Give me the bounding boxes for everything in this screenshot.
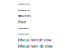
staticText: Presentation [17, 8, 29, 12]
staticText: Infocus'nam de slow [17, 38, 51, 42]
staticText: Infocus'nam de slow [17, 43, 52, 49]
staticText: Favourites [17, 14, 30, 18]
staticText: Documents [17, 26, 28, 30]
staticText: Presentation [17, 2, 29, 5]
staticText: Share [17, 20, 26, 24]
staticText: Presentation [17, 33, 28, 35]
